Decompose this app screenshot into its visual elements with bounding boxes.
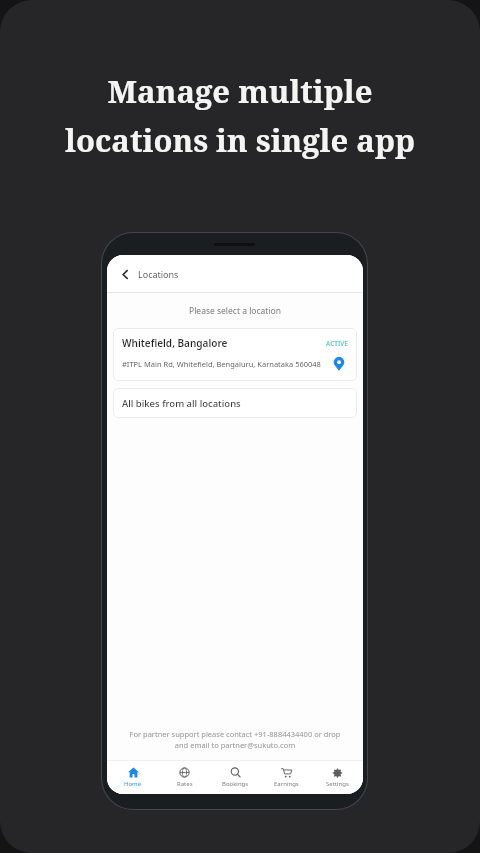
staticText: Settings	[326, 780, 349, 788]
staticText: Locations	[138, 268, 179, 280]
staticText: Rates	[177, 780, 193, 788]
button[interactable]: Earnings	[261, 761, 312, 794]
staticText: ACTIVE	[326, 339, 348, 348]
staticText: locations in single app	[18, 119, 462, 161]
staticText: All bikes from all locations	[122, 397, 241, 410]
button[interactable]: Whitefield, Bangalore	[113, 328, 357, 381]
staticText: #ITPL Main Rd, Whitefield, Bengaluru, Ka…	[122, 359, 324, 369]
button[interactable]: All bikes from all locations	[113, 388, 357, 418]
button[interactable]: Bookings	[210, 761, 261, 794]
staticText: Bookings	[222, 780, 249, 788]
staticText: Home	[124, 780, 142, 788]
button[interactable]: Rates	[159, 761, 210, 794]
staticText: Manage multiple	[18, 70, 462, 112]
staticText: Please select a location	[107, 305, 363, 317]
button[interactable]: Home	[107, 761, 159, 794]
staticText: For partner support please contact +91-8…	[123, 729, 347, 750]
button[interactable]: Settings	[312, 761, 363, 794]
button[interactable]: Back	[112, 261, 138, 287]
staticText: Whitefield, Bangalore	[122, 336, 326, 350]
staticText: Earnings	[274, 780, 299, 788]
button[interactable]: Open location on map	[330, 355, 348, 373]
